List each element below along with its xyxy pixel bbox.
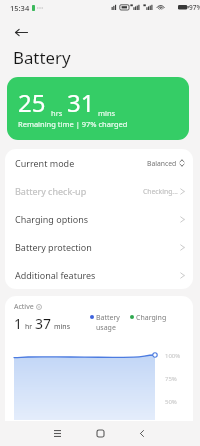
staticText: 15:34 [10,3,30,13]
staticText: 50% [165,398,177,406]
staticText: mins [54,322,71,332]
staticText: Charging options [15,213,89,225]
staticText: mins [98,108,116,118]
staticText: Current mode [15,157,75,169]
staticText: 100% [165,352,181,360]
staticText: 75% [165,375,177,383]
staticText: 1 [14,314,23,333]
staticText: Battery protection [15,241,92,253]
staticText: Balanced [147,159,177,168]
button[interactable]: Home [87,421,113,446]
staticText: hrs [51,108,63,118]
button[interactable]: Battery check-up [5,177,193,205]
button[interactable]: Charging options [5,205,193,233]
staticText: Charging [136,313,167,323]
button[interactable]: Battery protection [5,233,193,261]
button[interactable]: Current mode [5,149,193,177]
button[interactable]: Back [7,21,35,43]
staticText: Battery [13,46,71,69]
staticText: 25 [18,86,46,119]
staticText: Additional features [15,269,96,281]
button[interactable]: Additional features [5,261,193,289]
staticText: Remaining time | 97% charged [18,119,128,129]
staticText: Active [14,302,34,312]
staticText: 97% [189,3,200,12]
staticText: Battery usage [96,313,120,333]
staticText: 37 [35,314,52,333]
button[interactable]: 25 [7,77,189,140]
staticText: Battery check-up [15,185,87,197]
staticText: hr [25,322,33,332]
button[interactable]: Recents [44,421,70,446]
staticText: 31 [67,86,95,119]
button[interactable]: Back [129,421,155,446]
staticText: Checking... [143,187,178,196]
